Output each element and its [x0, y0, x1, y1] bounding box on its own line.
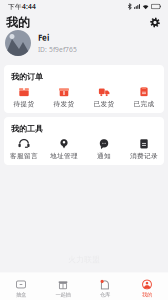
button[interactable]: 待提货	[4, 87, 44, 108]
staticText: 一起抽	[55, 291, 70, 298]
button[interactable]: 消费记录	[124, 139, 164, 160]
button[interactable]: 设置	[147, 14, 163, 30]
staticText: 我的订单	[11, 72, 43, 82]
button[interactable]: 一起抽	[42, 272, 84, 300]
staticText: 我的	[142, 291, 152, 298]
button[interactable]: 通知	[84, 139, 124, 160]
staticText: 下午4:44	[8, 2, 36, 11]
staticText: 已完成	[133, 100, 154, 108]
staticText: 地址管理	[50, 152, 78, 160]
button[interactable]: Fei	[0, 30, 168, 65]
staticText: 待发货	[53, 100, 74, 108]
staticText: 消费记录	[130, 152, 158, 160]
staticText: 我的工具	[11, 124, 43, 134]
staticText: 仓库	[100, 291, 110, 298]
button[interactable]: 我的	[126, 272, 168, 300]
button[interactable]: 抽盒	[0, 272, 42, 300]
staticText: 我的	[6, 15, 30, 30]
staticText: 待提货	[13, 100, 34, 108]
button[interactable]: 仓库	[84, 272, 126, 300]
button[interactable]: 已完成	[124, 87, 164, 108]
button[interactable]: 已发货	[84, 87, 124, 108]
button[interactable]: 客服留言	[4, 139, 44, 160]
staticText: 通知	[97, 152, 111, 160]
button[interactable]: 地址管理	[44, 139, 84, 160]
staticText: Fei	[38, 32, 49, 43]
staticText: 已发货	[93, 100, 114, 108]
staticText: 抽盒	[16, 291, 26, 298]
button[interactable]: 待发货	[44, 87, 84, 108]
staticText: ID: 5f9ef765	[38, 45, 77, 54]
staticText: 客服留言	[10, 152, 38, 160]
